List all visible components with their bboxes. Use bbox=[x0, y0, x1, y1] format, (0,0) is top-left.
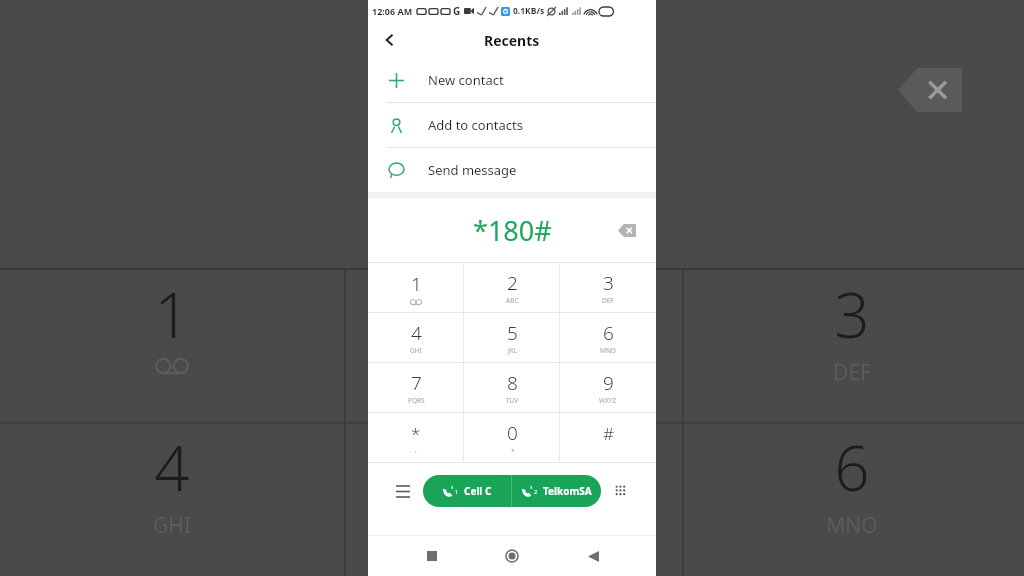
staticText: MNO bbox=[600, 346, 616, 355]
staticText: G bbox=[453, 4, 461, 18]
button[interactable]: 3 bbox=[560, 263, 656, 312]
button[interactable]: 2 bbox=[464, 263, 560, 312]
button[interactable]: Keypad bbox=[608, 478, 634, 504]
button[interactable]: 6 bbox=[560, 313, 656, 362]
button[interactable]: New contact bbox=[368, 58, 656, 102]
staticText: 0.1KB/s bbox=[513, 5, 545, 17]
button[interactable]: * bbox=[368, 413, 464, 462]
staticText: 2 bbox=[507, 270, 518, 296]
button[interactable]: Backspace bbox=[612, 215, 642, 245]
staticText: 9 bbox=[603, 370, 614, 396]
staticText: 6 bbox=[603, 320, 614, 346]
staticText: 5 bbox=[507, 320, 518, 346]
staticText: + bbox=[511, 446, 515, 455]
staticText: JKL bbox=[508, 346, 518, 355]
staticText: 0 bbox=[507, 420, 518, 446]
staticText: PQRS bbox=[408, 396, 425, 405]
staticText: 1 bbox=[154, 272, 190, 356]
staticText: 6 bbox=[834, 425, 870, 509]
staticText: 3 bbox=[603, 270, 614, 296]
staticText: *180# bbox=[473, 212, 552, 249]
staticText: Recents bbox=[484, 31, 540, 50]
button[interactable]: Menu bbox=[390, 478, 416, 504]
button[interactable]: 2 bbox=[512, 475, 601, 507]
staticText: 12:06 AM bbox=[372, 5, 413, 17]
staticText: # bbox=[603, 422, 614, 445]
button[interactable]: Back bbox=[576, 539, 610, 573]
staticText: WXYZ bbox=[599, 396, 617, 405]
staticText: MNO bbox=[826, 511, 878, 540]
staticText: Cell C bbox=[464, 484, 492, 498]
staticText: 7 bbox=[411, 370, 422, 396]
staticText: New contact bbox=[428, 71, 504, 89]
button[interactable]: Back bbox=[376, 26, 404, 54]
staticText: TelkomSA bbox=[543, 484, 592, 498]
button[interactable]: # bbox=[560, 413, 656, 462]
staticText: 4 bbox=[154, 425, 190, 509]
button[interactable]: 1 bbox=[423, 475, 511, 507]
button[interactable]: Home bbox=[495, 539, 529, 573]
staticText: DEF bbox=[833, 358, 871, 387]
staticText: Add to contacts bbox=[428, 116, 523, 134]
staticText: 2 bbox=[534, 488, 538, 495]
staticText: 1 bbox=[455, 488, 459, 495]
button[interactable]: 8 bbox=[464, 363, 560, 412]
button[interactable]: 9 bbox=[560, 363, 656, 412]
button[interactable]: 7 bbox=[368, 363, 464, 412]
staticText: * bbox=[411, 422, 421, 445]
staticText: GHI bbox=[153, 511, 191, 540]
button[interactable]: 0 bbox=[464, 413, 560, 462]
staticText: ‚ bbox=[415, 445, 417, 454]
button[interactable]: Add to contacts bbox=[368, 103, 656, 147]
staticText: 3 bbox=[834, 272, 870, 356]
staticText: GHI bbox=[410, 346, 422, 355]
staticText: Send message bbox=[428, 161, 517, 179]
button[interactable]: 4 bbox=[368, 313, 464, 362]
button[interactable]: 5 bbox=[464, 313, 560, 362]
button[interactable]: Recents bbox=[415, 539, 449, 573]
staticText: 1 bbox=[411, 271, 422, 297]
button[interactable]: 1 bbox=[368, 263, 464, 312]
staticText: TUV bbox=[506, 396, 519, 405]
staticText: 4 bbox=[411, 320, 422, 346]
staticText: ABC bbox=[506, 296, 519, 305]
button[interactable]: Send message bbox=[368, 148, 656, 192]
staticText: 8 bbox=[507, 370, 518, 396]
staticText: DEF bbox=[602, 296, 614, 305]
